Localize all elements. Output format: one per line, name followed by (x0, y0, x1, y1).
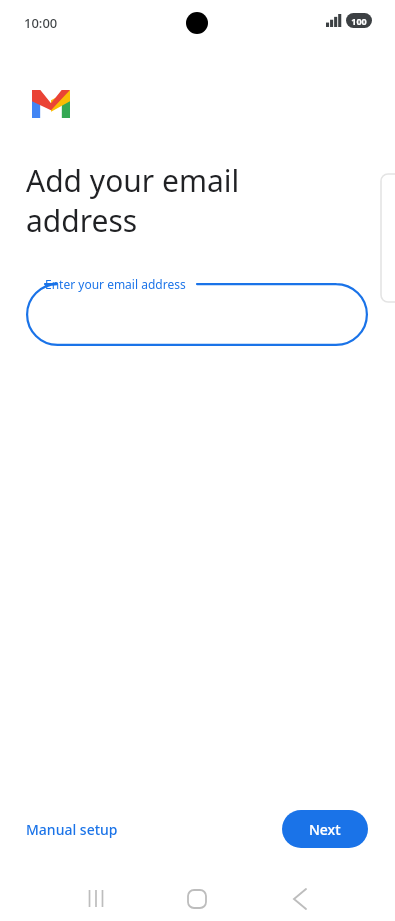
staticText: Next (309, 820, 341, 839)
staticText: 10:00 (24, 14, 58, 32)
button[interactable]: Recent apps (68, 876, 124, 921)
button[interactable]: Back (272, 876, 328, 921)
staticText: Enter your email address (45, 276, 186, 292)
staticText: Manual setup (26, 820, 118, 839)
staticText: Add your email address (26, 160, 240, 241)
button[interactable]: Next (282, 810, 368, 848)
button[interactable]: Enter your email address (26, 283, 368, 346)
staticText: 100 (351, 15, 367, 27)
button[interactable]: Manual setup (26, 814, 118, 845)
button[interactable]: Home (169, 876, 225, 921)
